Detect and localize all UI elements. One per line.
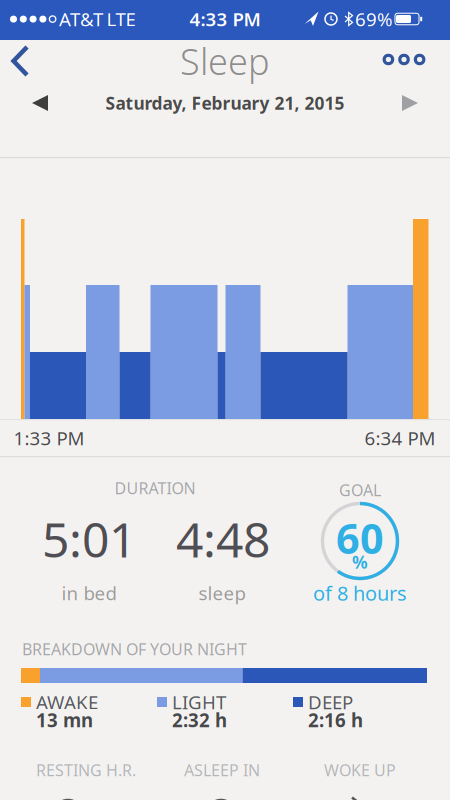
staticText: ASLEEP IN bbox=[184, 759, 260, 781]
button[interactable]: Back bbox=[11, 44, 31, 78]
staticText: 2:32 h bbox=[172, 708, 227, 732]
staticText: LIGHT bbox=[172, 690, 226, 714]
staticText: Sleep bbox=[180, 37, 270, 85]
staticText: RESTING H.R. bbox=[36, 759, 136, 781]
staticText: AWAKE bbox=[36, 690, 98, 714]
staticText: of 8 hours bbox=[313, 580, 407, 606]
staticText: 69% bbox=[355, 7, 393, 31]
staticText: BREAKDOWN OF YOUR NIGHT bbox=[22, 638, 247, 660]
button[interactable]: Next day bbox=[402, 95, 418, 111]
staticText: 13 mn bbox=[36, 708, 93, 732]
staticText: LTE bbox=[106, 7, 135, 31]
staticText: AT&T bbox=[59, 7, 103, 31]
button[interactable]: More options bbox=[381, 44, 427, 74]
staticText: GOAL bbox=[339, 479, 381, 501]
staticText: 60 bbox=[336, 511, 384, 565]
staticText: 4:48 bbox=[176, 507, 270, 571]
staticText: 1:33 PM bbox=[13, 426, 84, 450]
staticText: WOKE UP bbox=[324, 759, 396, 781]
staticText: sleep bbox=[198, 581, 245, 605]
staticText: 6:34 PM bbox=[364, 426, 435, 450]
staticText: DEEP bbox=[308, 690, 353, 714]
staticText: % bbox=[352, 550, 368, 573]
staticText: 2:16 h bbox=[308, 708, 363, 732]
staticText: 5:01 bbox=[42, 507, 136, 571]
staticText: Saturday, February 21, 2015 bbox=[105, 91, 344, 114]
staticText: 4:33 PM bbox=[189, 7, 260, 31]
staticText: in bed bbox=[61, 581, 116, 605]
button[interactable]: Previous day bbox=[32, 95, 48, 111]
staticText: DURATION bbox=[114, 477, 195, 499]
